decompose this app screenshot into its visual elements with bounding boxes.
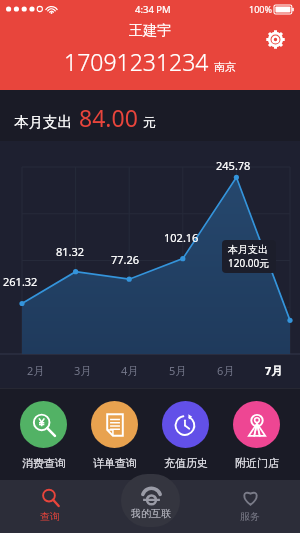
staticText: 261.32 (3, 274, 38, 289)
staticText: 元 (143, 114, 156, 130)
staticText: 我的互联 (131, 507, 171, 520)
staticText: 本月支出 (14, 113, 72, 131)
staticText: 本月支出 (228, 243, 268, 256)
button[interactable]: 附近门店 (229, 401, 284, 470)
staticText: 84.00 (79, 102, 138, 133)
staticText: 5月 (169, 363, 187, 378)
button[interactable]: 服务 (200, 480, 300, 533)
staticText: 4:34 PM (135, 3, 171, 16)
button[interactable]: 查询 (0, 480, 100, 533)
button[interactable]: Settings (260, 24, 290, 54)
staticText: 3月 (74, 363, 92, 378)
staticText: 102.16 (164, 230, 199, 245)
staticText: 充值历史 (164, 456, 208, 470)
staticText: 王建宇 (129, 22, 171, 40)
staticText: 245.78 (216, 158, 251, 173)
staticText: 120.00元 (228, 256, 270, 270)
button[interactable]: 详单查询 (87, 401, 142, 470)
staticText: 查询 (40, 510, 60, 523)
staticText: 服务 (240, 510, 260, 523)
staticText: 6月 (217, 363, 235, 378)
staticText: 2月 (27, 363, 45, 378)
staticText: 详单查询 (93, 456, 137, 470)
staticText: 4月 (121, 363, 139, 378)
staticText: 消费查询 (22, 456, 66, 470)
button[interactable]: 消费查询 (16, 401, 71, 470)
staticText: 81.32 (56, 244, 85, 259)
staticText: 17091231234 (64, 46, 209, 77)
staticText: 南京 (214, 60, 236, 74)
staticText: 7月 (265, 363, 283, 378)
staticText: 77.26 (111, 252, 140, 267)
staticText: 附近门店 (235, 456, 279, 470)
staticText: 100% (249, 3, 272, 15)
button[interactable]: 充值历史 (158, 401, 213, 470)
button[interactable]: 我的互联 (121, 474, 180, 527)
